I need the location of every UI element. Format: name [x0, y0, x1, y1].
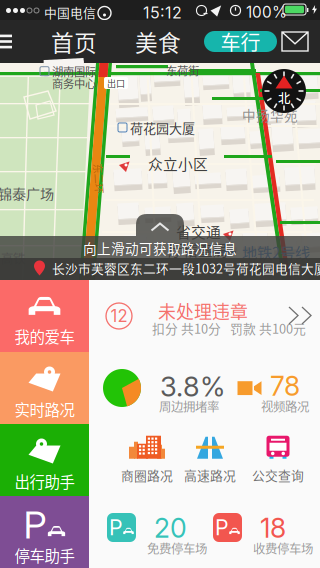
staticText: 视频路况: [261, 397, 309, 415]
staticText: 我的爱车: [14, 325, 74, 347]
staticText: 中扬华苑: [242, 105, 298, 125]
staticText: 车行: [220, 27, 260, 56]
button[interactable]: 出行助手: [0, 424, 89, 496]
button[interactable]: 3.8%: [89, 352, 320, 424]
staticText: P: [23, 502, 46, 548]
staticText: 首页: [51, 25, 97, 58]
staticText: 收费停车场: [253, 539, 313, 557]
staticText: 出行助手: [14, 470, 74, 492]
button[interactable]: P: [213, 496, 313, 568]
button[interactable]: P: [107, 496, 207, 568]
button[interactable]: 实时路况: [0, 352, 89, 424]
staticText: 中国电信: [44, 3, 96, 21]
staticText: 3.8%: [160, 370, 225, 403]
staticText: 省交通: [176, 221, 221, 242]
staticText: 出口: [107, 76, 125, 89]
staticText: 商圈路况: [121, 466, 173, 484]
button[interactable]: 车行: [204, 31, 277, 52]
staticText: P: [109, 515, 123, 540]
staticText: 100%: [246, 3, 287, 22]
button[interactable]: Messages: [278, 20, 312, 63]
staticText: 停车助手: [14, 544, 74, 566]
staticText: 北: [278, 88, 290, 106]
staticText: 周边拥堵率: [159, 397, 219, 415]
staticText: 公交查询: [252, 466, 304, 484]
staticText: 20: [154, 512, 187, 544]
button[interactable]: Menu: [0, 20, 22, 63]
staticText: 美食: [135, 25, 181, 58]
button[interactable]: 我的爱车: [0, 280, 89, 352]
staticText: 众立小区: [148, 153, 208, 174]
staticText: 东二环: [84, 171, 114, 186]
staticText: 15:12: [143, 3, 182, 22]
staticText: 湖南国际: [52, 63, 96, 79]
staticText: 扣分 共10分 罚款 共100元: [152, 319, 306, 337]
button[interactable]: 公交查询: [244, 424, 312, 496]
staticText: 东荷街: [166, 62, 199, 78]
button[interactable]: 12: [89, 280, 320, 352]
staticText: 向上滑动可获取路况信息: [83, 238, 237, 258]
staticText: 长沙市芙蓉区东二环一段1032号荷花园电信大厦: [52, 259, 320, 277]
staticText: 高速路况: [184, 466, 236, 484]
staticText: 免费停车场: [147, 539, 207, 557]
staticText: 实时路况: [14, 398, 74, 420]
button[interactable]: 商圈路况: [113, 424, 181, 496]
button[interactable]: 首页: [44, 20, 104, 63]
button[interactable]: 高速路况: [176, 424, 244, 496]
staticText: 商务中心: [52, 75, 96, 91]
staticText: 地铁2号线: [242, 241, 310, 263]
staticText: 未处理违章: [158, 298, 248, 324]
staticText: 厅稽查局: [168, 239, 228, 260]
staticText: 荷花园大厦: [130, 118, 195, 137]
button[interactable]: 美食: [128, 20, 188, 63]
staticText: 78: [270, 370, 300, 402]
staticText: 12: [110, 306, 127, 326]
staticText: 18: [260, 512, 286, 544]
button[interactable]: P: [0, 496, 89, 568]
staticText: P: [215, 515, 229, 540]
staticText: 高铁: [1, 249, 25, 267]
staticText: 锦泰广场: [0, 183, 54, 203]
